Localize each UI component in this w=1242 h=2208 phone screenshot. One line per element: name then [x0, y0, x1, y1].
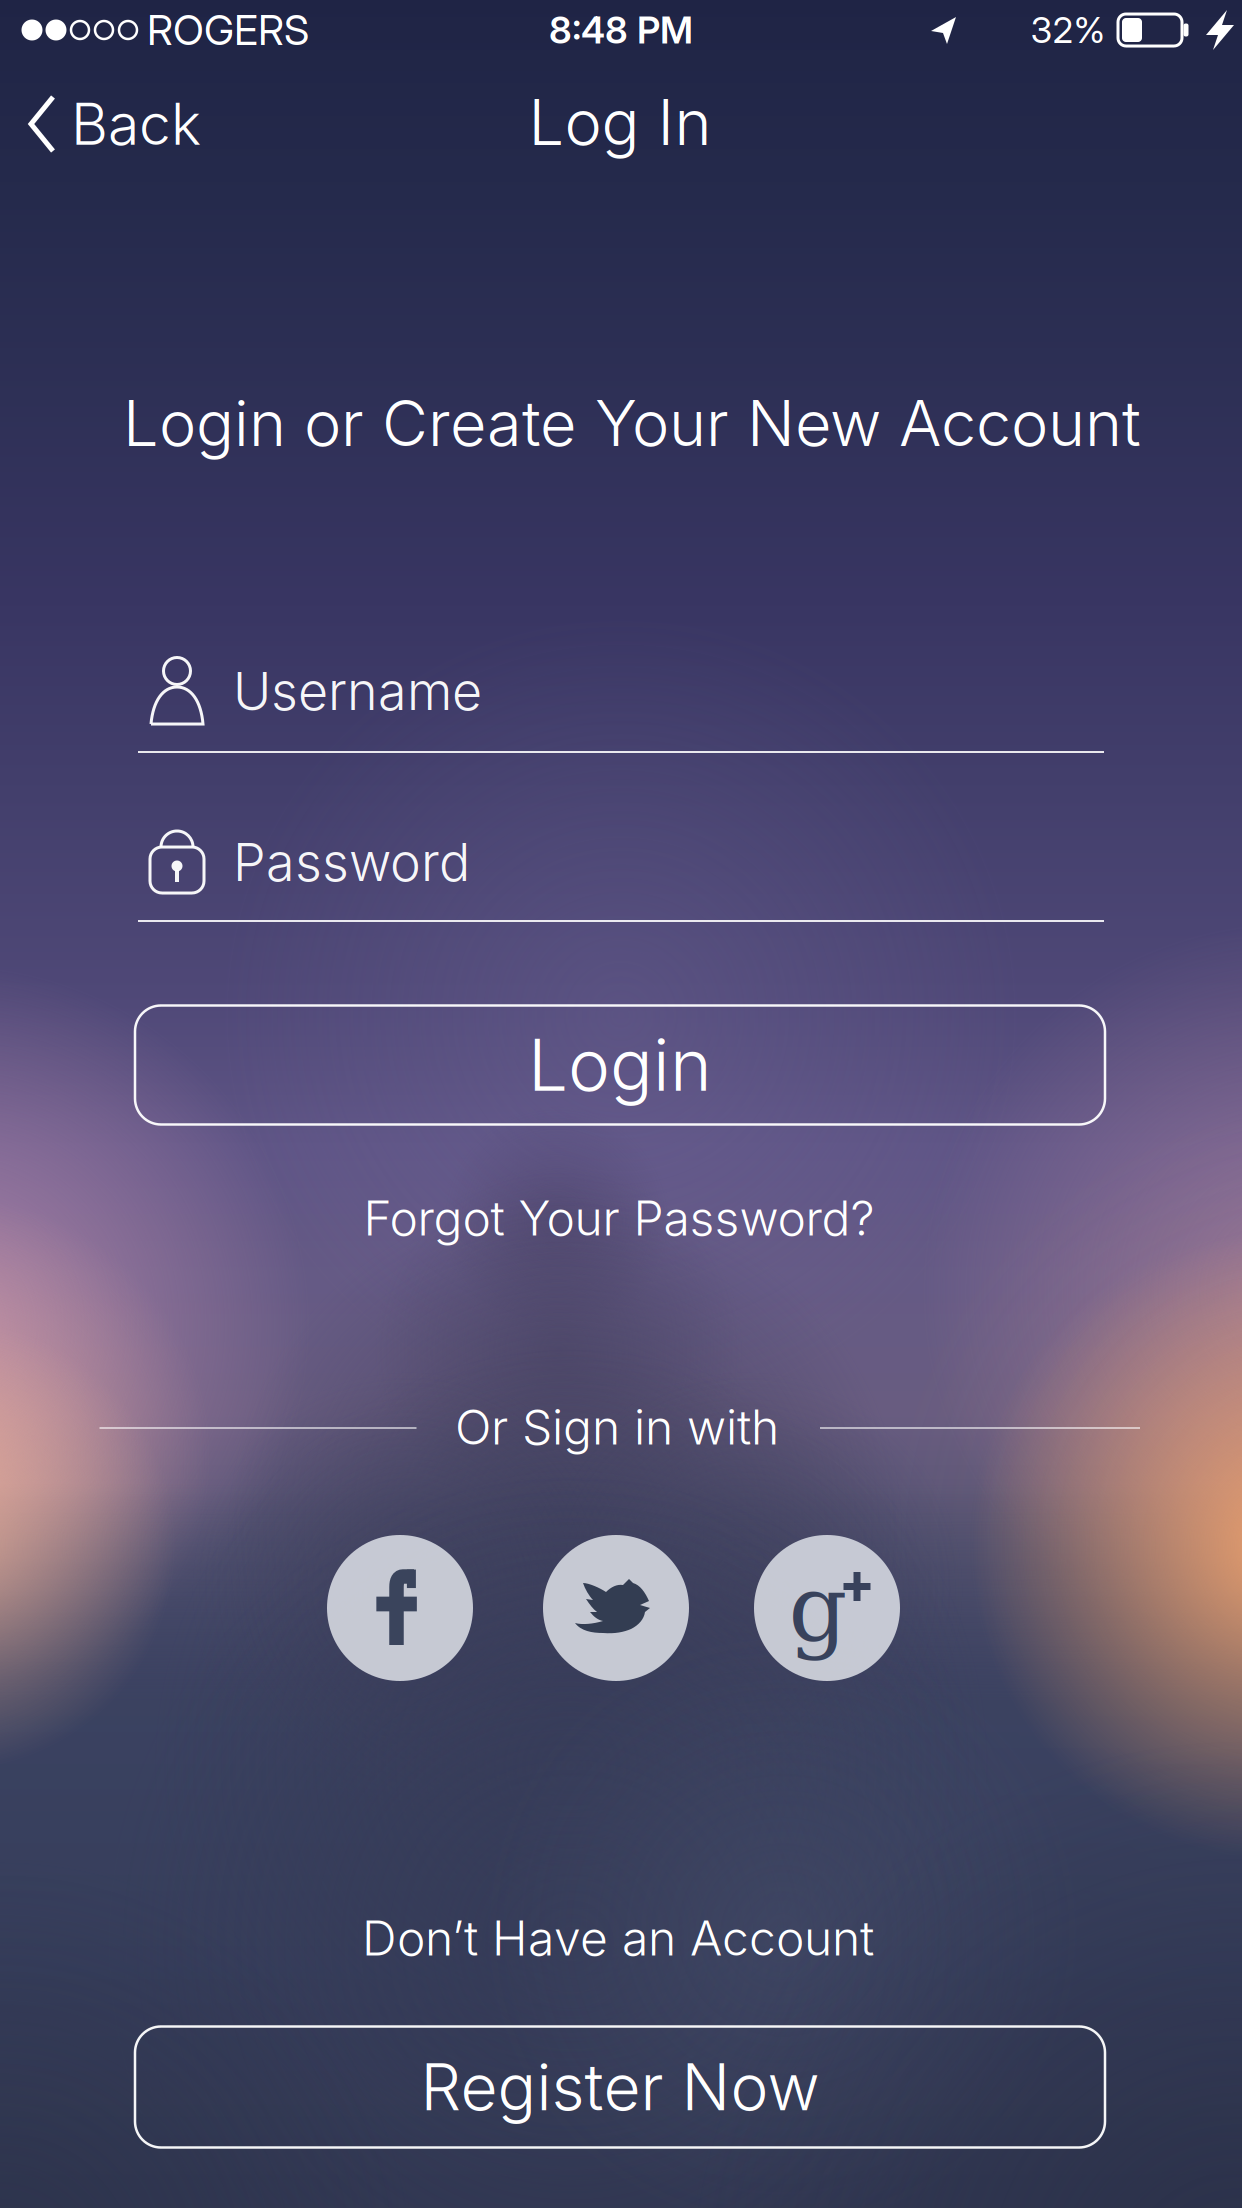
button[interactable]: Login — [135, 1005, 1105, 1124]
staticText: Username — [233, 659, 482, 722]
button[interactable]: Forgot Your Password? — [363, 1189, 874, 1247]
staticText: Login or Create Your New Account — [123, 385, 1141, 461]
staticText: 8:48 PM — [549, 8, 693, 52]
staticText: Login — [528, 1022, 712, 1108]
button[interactable]: Password — [136, 797, 1106, 927]
button[interactable]: Username — [136, 627, 1106, 757]
staticText: Password — [233, 830, 470, 893]
button[interactable]: Back — [29, 89, 201, 158]
button[interactable]: Sign in with Google Plus — [754, 1535, 900, 1681]
staticText: ROGERS — [147, 5, 309, 55]
staticText: Register Now — [420, 2048, 819, 2126]
button[interactable]: Register Now — [135, 2026, 1105, 2147]
staticText: Forgot Your Password? — [363, 1189, 874, 1247]
staticText: Log In — [528, 84, 711, 160]
button[interactable]: Sign in with Twitter — [543, 1535, 689, 1681]
staticText: 32% — [1030, 8, 1105, 52]
staticText: Or Sign in with — [455, 1398, 779, 1456]
staticText: Don’t Have an Account — [362, 1909, 874, 1967]
button[interactable]: Sign in with Facebook — [327, 1535, 473, 1681]
staticText: Back — [71, 89, 201, 158]
staticText: g — [788, 1555, 847, 1663]
